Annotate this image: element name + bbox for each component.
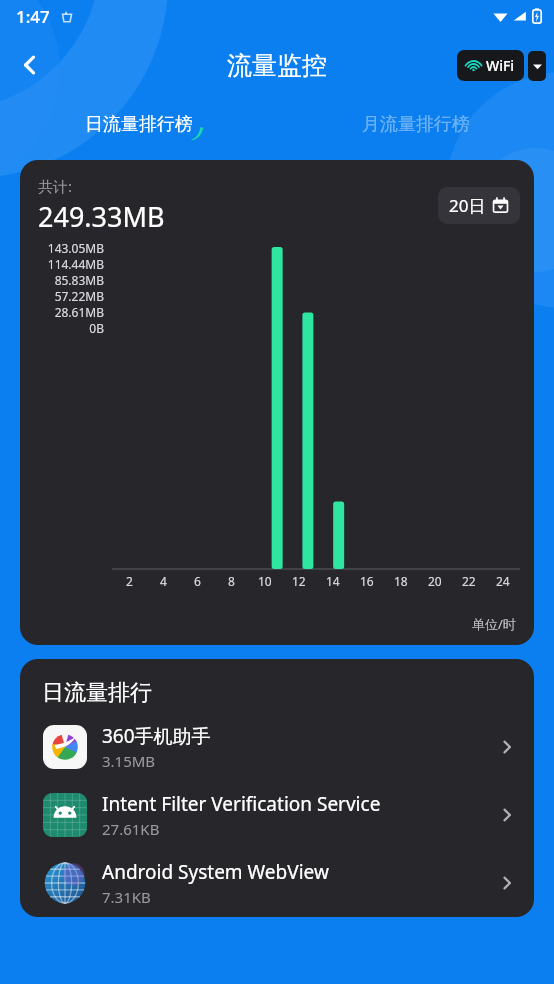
- staticText: 8: [228, 573, 235, 589]
- staticText: 2: [126, 573, 133, 589]
- staticText: 共计:: [38, 176, 73, 196]
- button[interactable]: WiFi: [457, 50, 524, 81]
- staticText: 3.15MB: [102, 751, 156, 771]
- button[interactable]: More options: [528, 51, 546, 81]
- staticText: 月流量排行榜: [362, 113, 470, 136]
- staticText: 6: [194, 573, 201, 589]
- staticText: 10: [258, 573, 272, 589]
- staticText: 日流量排行: [42, 679, 152, 707]
- staticText: 22: [462, 573, 476, 589]
- staticText: 249.33MB: [38, 198, 165, 235]
- staticText: 114.44MB: [20, 256, 104, 272]
- staticText: 27.61KB: [102, 819, 160, 839]
- staticText: 20: [428, 573, 442, 589]
- button[interactable]: Android System WebView: [20, 849, 534, 917]
- button[interactable]: Intent Filter Verification Service: [20, 781, 534, 849]
- staticText: 28.61MB: [20, 304, 104, 320]
- button[interactable]: Back: [8, 43, 52, 87]
- staticText: 85.83MB: [20, 272, 104, 288]
- button[interactable]: 日流量排行榜: [0, 98, 277, 150]
- staticText: 16: [360, 573, 374, 589]
- button[interactable]: 360手机助手: [20, 713, 534, 781]
- staticText: Intent Filter Verification Service: [102, 791, 381, 817]
- staticText: 4: [160, 573, 167, 589]
- staticText: 24: [496, 573, 510, 589]
- staticText: 日流量排行榜: [85, 113, 193, 136]
- button[interactable]: 20日: [438, 187, 520, 224]
- staticText: 20日: [449, 194, 486, 217]
- staticText: 流量监控: [227, 50, 327, 81]
- staticText: 1:47: [16, 5, 50, 28]
- staticText: Android System WebView: [102, 859, 329, 885]
- staticText: 18: [394, 573, 408, 589]
- staticText: 57.22MB: [20, 288, 104, 304]
- staticText: 7.31KB: [102, 887, 151, 907]
- staticText: 单位/时: [472, 615, 516, 633]
- staticText: 143.05MB: [20, 240, 104, 256]
- staticText: 12: [292, 573, 306, 589]
- button[interactable]: 月流量排行榜: [277, 98, 554, 150]
- staticText: 0B: [20, 320, 104, 336]
- staticText: 360手机助手: [102, 723, 211, 749]
- staticText: 14: [326, 573, 340, 589]
- staticText: WiFi: [486, 56, 515, 75]
